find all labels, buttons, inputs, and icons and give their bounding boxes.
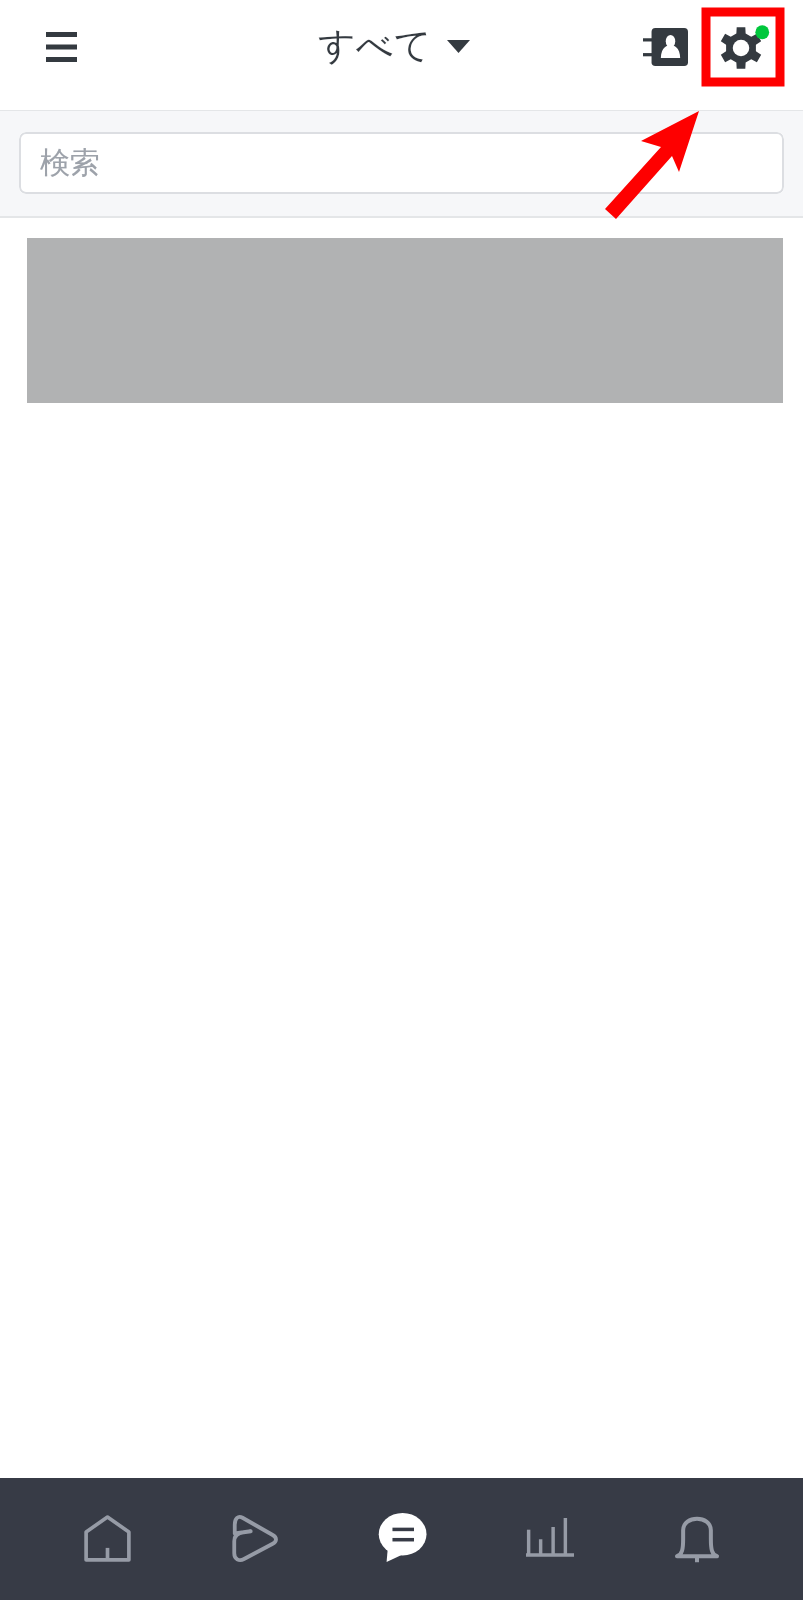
button[interactable]: すべて — [318, 22, 470, 69]
button[interactable]: Settings — [708, 0, 784, 111]
button[interactable]: Menu — [0, 0, 123, 111]
button[interactable]: Home — [33, 1478, 181, 1600]
button[interactable]: Contacts — [632, 0, 708, 111]
button[interactable]: Wallet — [476, 1478, 623, 1600]
button[interactable]: Notifications — [623, 1478, 770, 1600]
button[interactable]: VOOM — [181, 1478, 329, 1600]
staticText: すべて — [318, 22, 432, 69]
staticText: 検索 — [40, 144, 100, 182]
button[interactable]: 検索 — [19, 132, 784, 194]
button[interactable]: Chats — [329, 1478, 476, 1600]
